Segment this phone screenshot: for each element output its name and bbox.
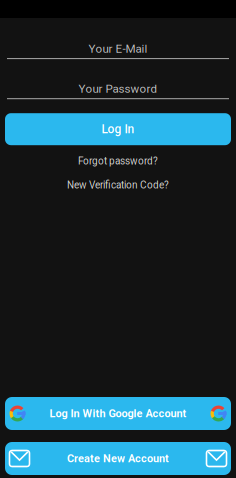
button[interactable]: New Verification Code?	[5, 177, 231, 193]
staticText: Log In With Google Account	[49, 407, 186, 420]
button[interactable]: Log In With Google Account	[5, 397, 231, 430]
staticText: Your E-Mail	[88, 42, 147, 56]
staticText: New Verification Code?	[67, 179, 169, 191]
staticText: Your Password	[78, 82, 157, 96]
staticText: Create New Account	[67, 452, 169, 465]
staticText: Log In	[101, 122, 134, 136]
button[interactable]: Log In	[5, 113, 231, 145]
button[interactable]: Forgot password?	[5, 153, 231, 169]
button[interactable]: Create New Account	[5, 442, 231, 475]
staticText: Forgot password?	[78, 155, 158, 167]
